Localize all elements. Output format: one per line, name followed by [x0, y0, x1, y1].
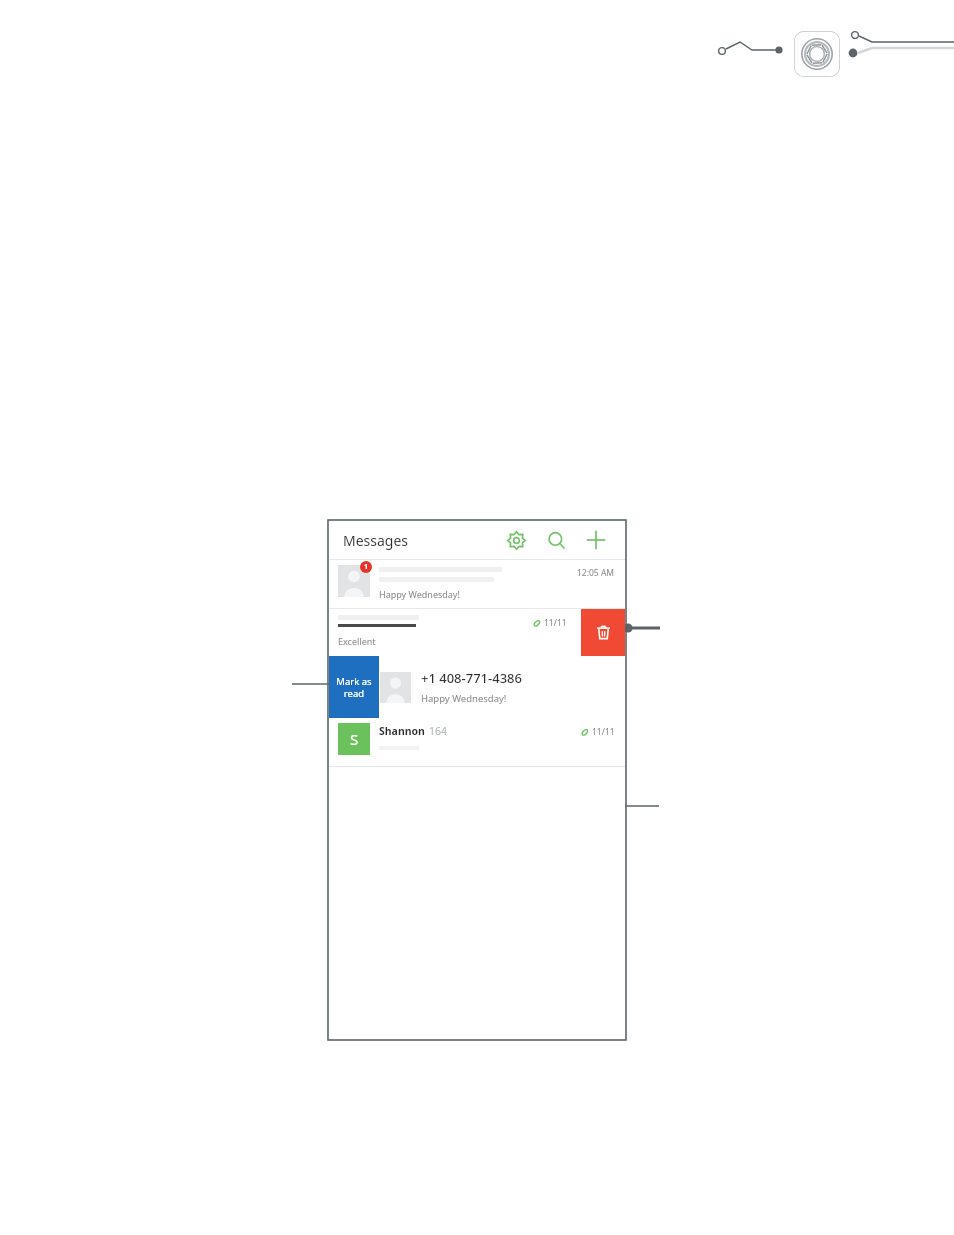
button[interactable]: S — [329, 718, 625, 766]
staticText: Excellent — [338, 635, 376, 647]
button[interactable]: 1 — [329, 560, 625, 608]
staticText: Shannon — [379, 724, 425, 738]
button[interactable]: +1 408-771-4386 — [329, 656, 625, 718]
staticText: Messages — [343, 531, 409, 550]
button[interactable]: Mark as read — [329, 656, 379, 718]
button[interactable]: Delete — [581, 609, 625, 656]
staticText: Happy Wednesday! — [421, 692, 507, 705]
staticText: +1 408-771-4386 — [421, 669, 522, 687]
staticText: Mark as read — [329, 675, 379, 700]
button[interactable]: Settings — [501, 525, 531, 555]
staticText: 1 — [364, 562, 369, 572]
staticText: Happy Wednesday! — [379, 588, 460, 600]
staticText: S — [350, 729, 359, 749]
button[interactable]: Excellent — [329, 609, 625, 656]
button[interactable]: New message — [581, 525, 611, 555]
staticText: 164 — [429, 724, 448, 738]
button[interactable]: Search — [541, 525, 571, 555]
staticText: 11/11 — [544, 617, 567, 629]
staticText: 12:05 AM — [577, 567, 615, 579]
other: App icon — [794, 31, 840, 77]
staticText: 11/11 — [592, 726, 615, 738]
